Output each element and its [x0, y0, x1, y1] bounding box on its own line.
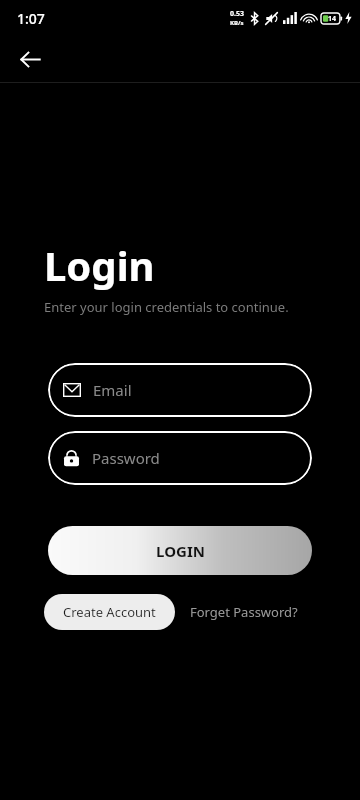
button[interactable]: Forget Password? [188, 597, 300, 627]
button[interactable]: Email [48, 363, 312, 417]
staticText: Enter your login credentials to continue… [44, 298, 289, 316]
staticText: 1:07 [17, 9, 45, 28]
button[interactable]: Password [48, 431, 312, 485]
staticText: Forget Password? [190, 603, 298, 621]
staticText: Login [44, 238, 155, 292]
staticText: 0.53 [230, 9, 244, 19]
staticText: Password [92, 448, 160, 468]
staticText: Create Account [63, 603, 156, 621]
staticText: Email [93, 380, 132, 400]
button[interactable]: Back [10, 39, 50, 79]
staticText: KB/s [230, 19, 244, 27]
button[interactable]: LOGIN [48, 526, 312, 575]
staticText: LOGIN [156, 541, 205, 561]
staticText: 14 [328, 14, 337, 24]
button[interactable]: Create Account [44, 594, 175, 630]
